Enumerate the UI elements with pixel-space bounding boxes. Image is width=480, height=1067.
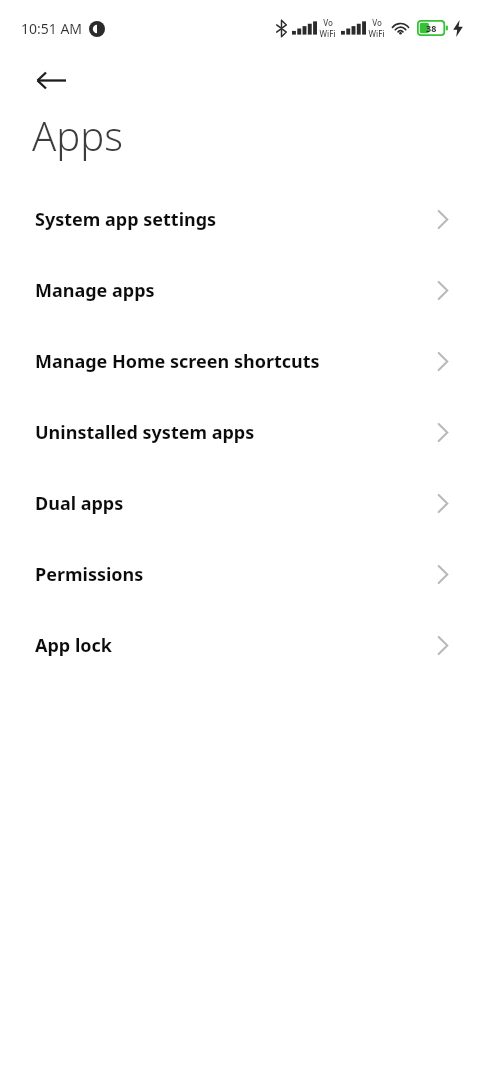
button[interactable]: Manage Home screen shortcuts: [0, 326, 480, 397]
button[interactable]: App lock: [0, 610, 480, 681]
staticText: System app settings: [35, 207, 217, 232]
staticText: 10:51 AM: [21, 19, 83, 38]
staticText: WiFi: [368, 28, 385, 39]
staticText: Manage apps: [35, 278, 155, 303]
staticText: 38: [426, 22, 437, 34]
staticText: App lock: [35, 633, 112, 658]
staticText: WiFi: [319, 28, 336, 39]
button[interactable]: Permissions: [0, 539, 480, 610]
staticText: Vo: [323, 17, 333, 28]
button[interactable]: Dual apps: [0, 468, 480, 539]
button[interactable]: Back: [28, 57, 74, 103]
staticText: Manage Home screen shortcuts: [35, 349, 320, 374]
staticText: Permissions: [35, 562, 144, 587]
button[interactable]: System app settings: [0, 184, 480, 255]
staticText: Vo: [372, 17, 382, 28]
staticText: Uninstalled system apps: [35, 420, 255, 445]
button[interactable]: Manage apps: [0, 255, 480, 326]
button[interactable]: Uninstalled system apps: [0, 397, 480, 468]
staticText: Dual apps: [35, 491, 124, 516]
staticText: Apps: [32, 108, 123, 162]
